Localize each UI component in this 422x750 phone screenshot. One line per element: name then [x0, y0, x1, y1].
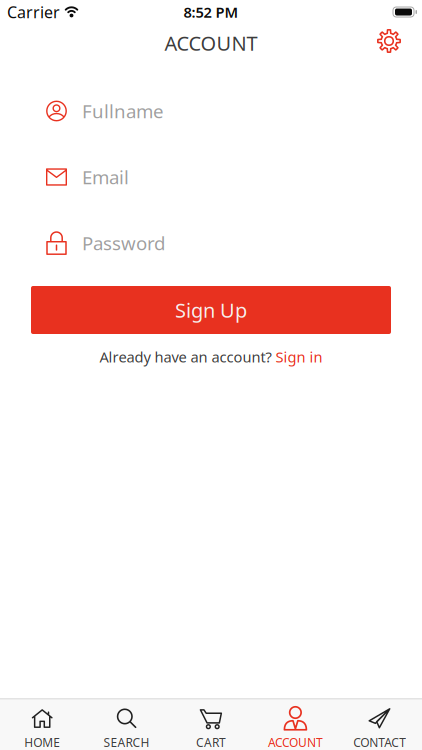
staticText: Password	[82, 231, 165, 255]
button[interactable]: SEARCH	[84, 697, 169, 750]
button[interactable]: CART	[169, 697, 253, 750]
staticText: SEARCH	[104, 734, 150, 750]
staticText: HOME	[24, 734, 60, 750]
staticText: Sign Up	[175, 297, 247, 323]
button[interactable]: Email text field	[0, 164, 422, 190]
button[interactable]: ACCOUNT	[253, 697, 338, 750]
button[interactable]: Settings	[373, 25, 405, 57]
button[interactable]: Password text field	[0, 230, 422, 256]
staticText: Already have an account?	[99, 347, 271, 366]
staticText: CONTACT	[353, 734, 406, 750]
staticText: Email	[82, 165, 129, 189]
button[interactable]: HOME	[0, 697, 84, 750]
button[interactable]: CONTACT	[338, 697, 422, 750]
button[interactable]: Sign Up	[31, 286, 391, 334]
staticText: 8:52 PM	[183, 2, 238, 22]
staticText: ACCOUNT	[164, 30, 257, 56]
staticText: CART	[196, 734, 226, 750]
staticText: Fullname	[82, 99, 164, 123]
staticText: Carrier	[7, 1, 60, 23]
staticText: ACCOUNT	[268, 734, 323, 750]
button[interactable]: Sign in	[275, 347, 322, 366]
button[interactable]: Fullname text field	[0, 98, 422, 124]
staticText: Sign in	[275, 347, 322, 366]
